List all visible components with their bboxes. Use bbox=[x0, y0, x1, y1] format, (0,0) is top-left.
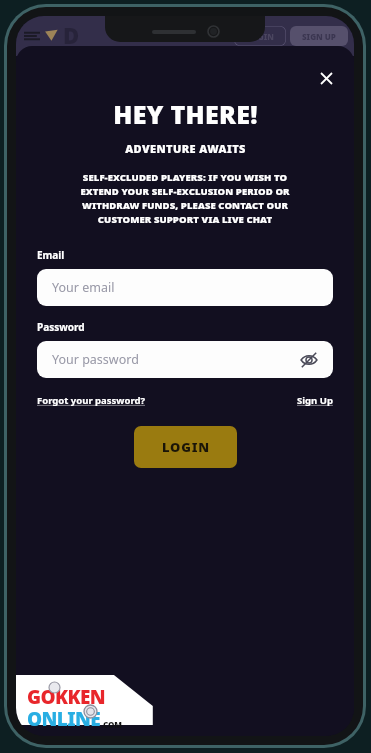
button[interactable]: Forgot your password? bbox=[37, 394, 145, 407]
staticText: Your password bbox=[52, 351, 139, 368]
staticText: LOGIN bbox=[247, 31, 274, 42]
staticText: D bbox=[63, 20, 80, 50]
button[interactable]: LOGIN bbox=[234, 26, 286, 46]
staticText: ADVENTURE AWAITS bbox=[125, 141, 246, 156]
button[interactable]: Your email bbox=[37, 269, 333, 306]
button[interactable]: LOGIN bbox=[134, 426, 237, 468]
staticText: Email bbox=[37, 248, 65, 262]
staticText: Sign Up bbox=[297, 394, 333, 407]
button[interactable]: Your password bbox=[37, 341, 333, 378]
staticText: LOGIN bbox=[162, 438, 210, 456]
staticText: SELF-EXCLUDED PLAYERS: IF YOU WISH TO EX… bbox=[80, 171, 290, 226]
button[interactable]: Close bbox=[314, 66, 338, 90]
staticText: SIGN UP bbox=[302, 31, 336, 42]
button[interactable]: SIGN UP bbox=[290, 26, 348, 46]
staticText: HEY THERE! bbox=[113, 97, 258, 131]
staticText: Forgot your password? bbox=[37, 394, 145, 407]
button[interactable]: Menu bbox=[24, 28, 40, 44]
staticText: Your email bbox=[52, 279, 115, 296]
button[interactable]: Show password bbox=[296, 347, 322, 373]
staticText: Password bbox=[37, 320, 85, 334]
staticText: GOKKEN bbox=[27, 684, 105, 710]
staticText: ONLINE bbox=[27, 706, 101, 732]
button[interactable]: Sign Up bbox=[297, 394, 333, 407]
staticText: .COM bbox=[101, 719, 123, 730]
